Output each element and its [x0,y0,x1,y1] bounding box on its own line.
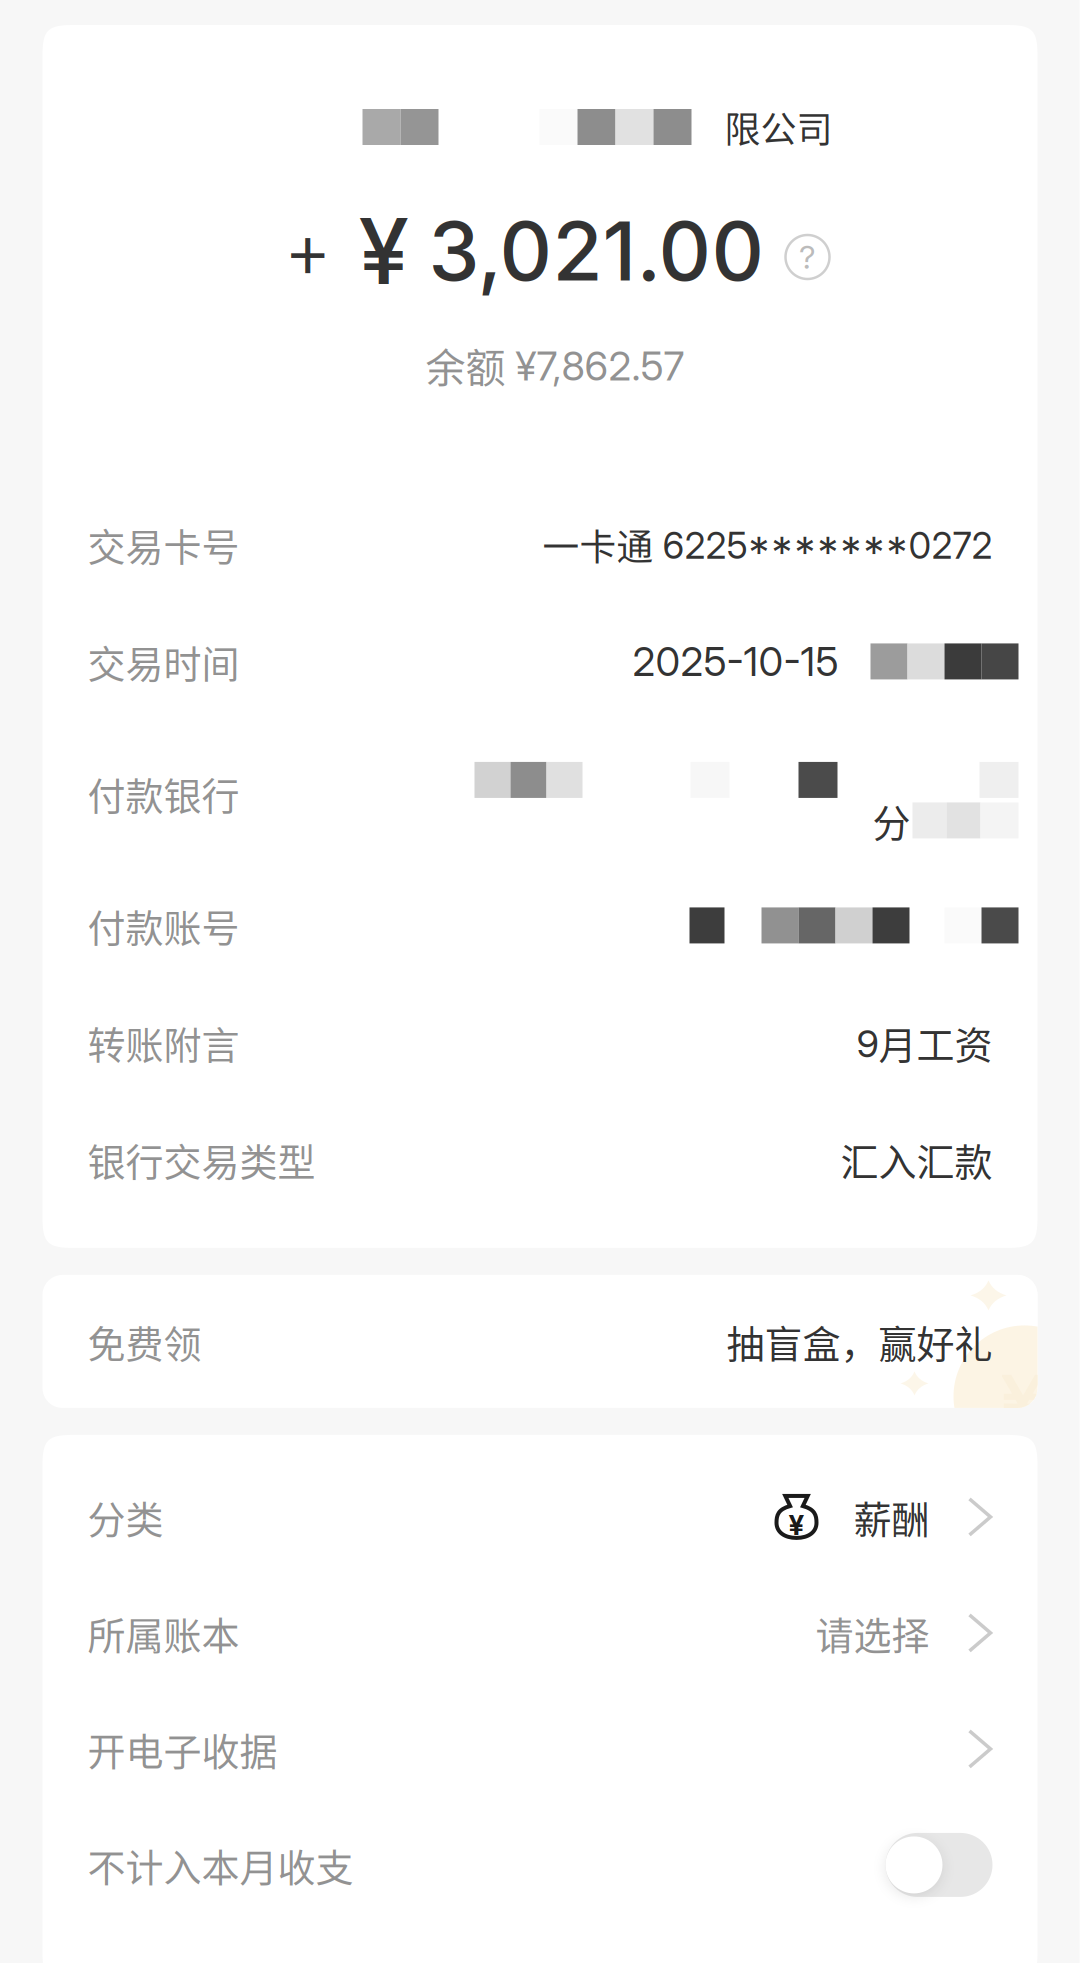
button[interactable]: 所属账本 [42,1575,1037,1691]
staticText: 抽盲盒，赢好礼 [726,1314,992,1369]
staticText: 开电子收据 [87,1721,277,1776]
staticText: 9月工资 [856,1015,992,1070]
staticText: 分 [872,793,910,848]
staticText: ￥ [985,1358,1054,1446]
staticText: ¥ [788,1508,804,1542]
staticText: ? [799,238,816,276]
staticText: 限公司 [724,101,832,153]
staticText: + [288,201,326,301]
button[interactable]: 开电子收据 [42,1691,1037,1807]
staticText: 汇入汇款 [840,1132,992,1187]
staticText: 一卡通 6225*******0272 [542,518,992,571]
staticText: 3,021.00 [428,202,764,300]
staticText: 银行交易类型 [87,1132,315,1187]
staticText: 所属账本 [87,1605,239,1660]
staticText: 付款账号 [87,898,239,953]
staticText: 转账附言 [87,1015,239,1070]
button[interactable]: 分类 [42,1459,1037,1575]
staticText: 分类 [87,1489,163,1544]
staticText: 免费领 [87,1314,201,1369]
staticText: 余额 ¥7,862.57 [425,336,684,394]
staticText: ¥ [358,196,408,306]
staticText: 薪酬 [853,1489,929,1544]
staticText: 付款银行 [87,766,239,821]
button[interactable]: ￥ [42,1275,1037,1408]
staticText: 请选择 [815,1605,929,1660]
button[interactable]: 不计入本月收支 [42,1807,1037,1923]
staticText: 交易卡号 [87,517,239,572]
staticText: 不计入本月收支 [87,1837,353,1892]
button[interactable]: 关于此金额 [785,235,829,279]
staticText: 交易时间 [87,634,239,689]
staticText: 2025-10-15 [632,637,838,686]
